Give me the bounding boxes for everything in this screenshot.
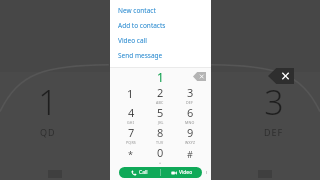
button[interactable]: * [116, 145, 145, 165]
staticText: 6 [187, 105, 194, 120]
staticText: Call [139, 169, 148, 176]
button[interactable]: 8 [145, 125, 175, 145]
staticText: + [159, 160, 162, 165]
staticText: 3 [187, 85, 194, 100]
button[interactable]: 0 [145, 145, 175, 165]
staticText: Add to contacts [118, 21, 166, 30]
staticText: 1 [127, 86, 134, 101]
button[interactable]: 9 [175, 125, 205, 145]
staticText: # [187, 148, 193, 160]
button[interactable]: Backspace [193, 72, 206, 81]
staticText: PQRS [126, 140, 136, 145]
staticText: GHI [127, 120, 135, 125]
staticText: Video [179, 169, 193, 176]
staticText: 5 [157, 105, 164, 120]
button[interactable]: Add to contacts [118, 18, 211, 33]
button[interactable]: Video call [118, 33, 211, 48]
button[interactable]: Send message [118, 48, 211, 63]
staticText: 3 [264, 79, 284, 125]
staticText: DEF [264, 126, 284, 138]
staticText: 2 [157, 85, 164, 100]
button[interactable]: 3 [175, 85, 205, 105]
staticText: 1 [157, 69, 164, 85]
staticText: JKL [158, 120, 164, 125]
staticText: 8 [157, 125, 164, 140]
staticText: 9 [187, 125, 194, 140]
staticText: New contact [118, 6, 156, 15]
button[interactable]: 4 [116, 105, 145, 125]
button[interactable]: New contact [118, 3, 211, 18]
staticText: 0 [157, 145, 164, 160]
staticText: MNO [185, 120, 195, 125]
button[interactable]: 7 [116, 125, 145, 145]
staticText: DEF [186, 100, 194, 105]
staticText: ABC [156, 100, 164, 105]
staticText: Video call [118, 36, 147, 45]
staticText: 1 [38, 79, 58, 125]
staticText: Send message [118, 51, 163, 60]
staticText: TUV [156, 140, 164, 145]
staticText: 4 [128, 105, 135, 120]
button[interactable]: More options [204, 168, 209, 177]
button[interactable]: Video [161, 167, 202, 178]
button[interactable]: Call [119, 167, 160, 178]
button[interactable]: 1 [116, 85, 145, 105]
button[interactable]: Backspace [268, 68, 294, 84]
button[interactable]: # [175, 145, 205, 165]
staticText: QD [40, 126, 56, 138]
staticText: * [128, 148, 133, 160]
button[interactable]: 5 [145, 105, 175, 125]
staticText: WXYZ [185, 140, 196, 145]
staticText: 7 [128, 125, 135, 140]
button[interactable]: 2 [145, 85, 175, 105]
button[interactable]: 6 [175, 105, 205, 125]
